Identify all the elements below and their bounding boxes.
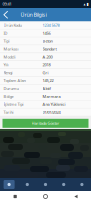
staticText: Gri [42, 70, 48, 75]
button[interactable]: More [73, 178, 91, 191]
staticText: A-200 [42, 54, 52, 59]
staticText: Markası [3, 46, 18, 52]
staticText: Durumu [3, 86, 18, 91]
staticText: Ürün Kodu [3, 23, 21, 28]
staticText: 09:41 [2, 1, 11, 7]
staticText: 01/01/2024 [42, 109, 60, 115]
staticText: Ürün Bilgisi [20, 11, 46, 18]
button[interactable]: Haritada Göster [2, 119, 88, 128]
button[interactable]: Layers [0, 178, 18, 191]
button[interactable]: Back [61, 191, 91, 202]
button[interactable]: Locate [18, 178, 36, 191]
staticText: Haritada Göster [31, 121, 59, 126]
button[interactable]: Home [30, 191, 61, 202]
staticText: Tipi [3, 38, 9, 44]
staticText: Yılı [3, 62, 8, 67]
staticText: Rengi [3, 70, 12, 75]
button[interactable]: Route [36, 178, 55, 191]
staticText: Tarihi [3, 109, 13, 115]
staticText: ▴ ▮ [83, 2, 88, 6]
staticText: 145,22 [42, 78, 53, 83]
button[interactable]: Recents [0, 191, 30, 202]
staticText: 1234 5678 [42, 23, 59, 28]
staticText: 2018 [42, 62, 50, 67]
button[interactable]: Measure [55, 178, 73, 191]
staticText: Standart [42, 46, 56, 52]
staticText: Toplam Alan [3, 78, 25, 83]
staticText: Aktif [42, 86, 50, 91]
staticText: 1456 [42, 30, 50, 36]
button[interactable]: Back [0, 8, 10, 21]
staticText: Beton [42, 38, 52, 44]
staticText: İşletme Tipi [3, 102, 23, 107]
staticText: Marmara [42, 94, 60, 99]
staticText: Ana Yüklenici [42, 102, 65, 107]
staticText: ID [3, 30, 7, 36]
staticText: Bölge [3, 94, 13, 99]
staticText: Modeli [3, 54, 15, 59]
